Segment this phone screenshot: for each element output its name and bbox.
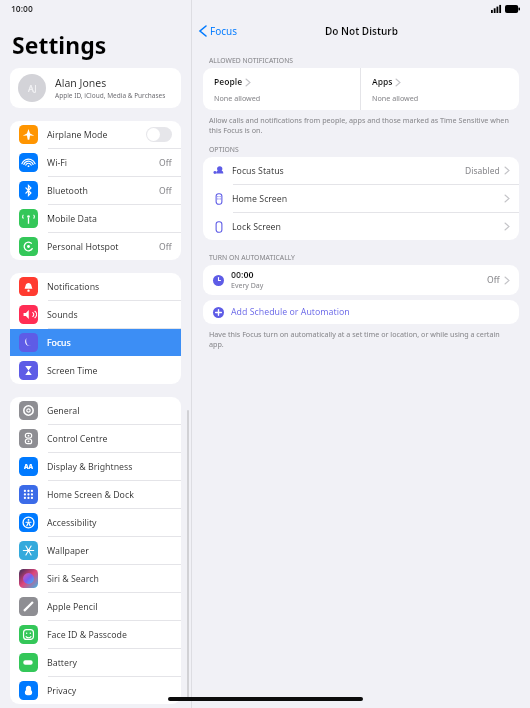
staticText: Sounds xyxy=(47,309,172,321)
staticText: General xyxy=(47,405,172,417)
staticText: Focus Status xyxy=(232,165,465,177)
staticText: ALLOWED NOTIFICATIONS xyxy=(209,56,294,65)
button[interactable]: Lock Screen xyxy=(203,213,519,240)
staticText: Mobile Data xyxy=(47,213,172,225)
button[interactable]: Wi-Fi xyxy=(10,149,181,176)
button[interactable]: Focus xyxy=(10,329,181,356)
button[interactable]: Siri & Search xyxy=(10,565,181,592)
staticText: Bluetooth xyxy=(47,185,159,197)
staticText: None allowed xyxy=(372,93,419,103)
button[interactable]: Bluetooth xyxy=(10,177,181,204)
button[interactable]: Personal Hotspot xyxy=(10,233,181,260)
button[interactable]: 00:00 xyxy=(203,265,519,295)
staticText: Alan Jones xyxy=(55,76,107,90)
button[interactable]: Add Schedule or Automation xyxy=(203,300,519,324)
staticText: Screen Time xyxy=(47,365,172,377)
staticText: Every Day xyxy=(231,281,264,291)
staticText: TURN ON AUTOMATICALLY xyxy=(209,253,295,262)
staticText: Privacy xyxy=(47,685,172,697)
staticText: Off xyxy=(487,274,500,286)
button[interactable]: Home Screen & Dock xyxy=(10,481,181,508)
staticText: Off xyxy=(159,241,172,253)
staticText: OPTIONS xyxy=(209,145,239,154)
staticText: AA xyxy=(24,462,33,471)
button[interactable]: General xyxy=(10,397,181,424)
staticText: 10:00 xyxy=(11,3,33,15)
staticText: Allow calls and notifications from peopl… xyxy=(209,115,510,135)
button[interactable]: AJ xyxy=(10,68,181,108)
staticText: Personal Hotspot xyxy=(47,241,159,253)
staticText: Notifications xyxy=(47,281,172,293)
staticText: Face ID & Passcode xyxy=(47,629,172,641)
button[interactable]: AA xyxy=(10,453,181,480)
staticText: Focus xyxy=(47,337,172,349)
button[interactable]: Focus xyxy=(192,21,244,41)
staticText: Wallpaper xyxy=(47,545,172,557)
button[interactable]: Sounds xyxy=(10,301,181,328)
button[interactable]: Mobile Data xyxy=(10,205,181,232)
button[interactable]: Airplane Mode toggle xyxy=(146,127,172,142)
staticText: 00:00 xyxy=(231,269,254,281)
button[interactable]: Wallpaper xyxy=(10,537,181,564)
staticText: Apps xyxy=(372,76,393,88)
staticText: None allowed xyxy=(214,93,261,103)
staticText: AJ xyxy=(28,82,37,94)
button[interactable]: Apple Pencil xyxy=(10,593,181,620)
staticText: Off xyxy=(159,157,172,169)
staticText: Home Screen xyxy=(232,193,505,205)
button[interactable]: Airplane Mode xyxy=(10,121,181,148)
staticText: Home Screen & Dock xyxy=(47,489,172,501)
staticText: Off xyxy=(159,185,172,197)
staticText: Siri & Search xyxy=(47,573,172,585)
staticText: Focus xyxy=(210,24,238,38)
staticText: Do Not Disturb xyxy=(325,24,398,38)
button[interactable]: People xyxy=(203,68,360,110)
staticText: Disabled xyxy=(465,165,500,177)
staticText: Control Centre xyxy=(47,433,172,445)
staticText: Accessibility xyxy=(47,517,172,529)
button[interactable]: Control Centre xyxy=(10,425,181,452)
staticText: Add Schedule or Automation xyxy=(231,306,350,318)
staticText: People xyxy=(214,76,243,88)
staticText: Wi-Fi xyxy=(47,157,159,169)
staticText: Display & Brightness xyxy=(47,461,172,473)
staticText: Lock Screen xyxy=(232,221,505,233)
staticText: Apple Pencil xyxy=(47,601,172,613)
button[interactable]: Accessibility xyxy=(10,509,181,536)
button[interactable]: Face ID & Passcode xyxy=(10,621,181,648)
button[interactable]: Privacy xyxy=(10,677,181,704)
button[interactable]: Battery xyxy=(10,649,181,676)
button[interactable]: Focus Status xyxy=(203,157,519,184)
staticText: Airplane Mode xyxy=(47,129,146,141)
button[interactable]: Screen Time xyxy=(10,357,181,384)
button[interactable]: Notifications xyxy=(10,273,181,300)
staticText: Have this Focus turn on automatically at… xyxy=(209,329,510,349)
button[interactable]: Home Screen xyxy=(203,185,519,212)
staticText: Battery xyxy=(47,657,172,669)
staticText: Apple ID, iCloud, Media & Purchases xyxy=(55,91,166,100)
staticText: Settings xyxy=(12,29,107,60)
button[interactable]: Apps xyxy=(361,68,519,110)
